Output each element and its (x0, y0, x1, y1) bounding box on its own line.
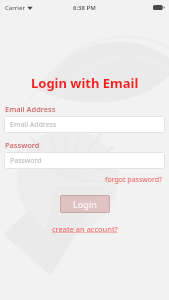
staticText: Login with Email (31, 74, 139, 92)
staticText: 6:38 PM (73, 4, 96, 12)
staticText: Password (10, 156, 42, 166)
button[interactable]: Password (4, 152, 165, 169)
staticText: Password (5, 140, 40, 150)
staticText: create an account? (52, 224, 118, 234)
staticText: Email Address (5, 104, 56, 114)
staticText: Email Address (10, 120, 57, 130)
staticText: forgot password? (105, 175, 163, 185)
staticText: Carrier (5, 4, 25, 12)
button[interactable]: create an account? (50, 222, 120, 236)
staticText: Login (73, 198, 97, 210)
button[interactable]: Login (60, 195, 110, 213)
button[interactable]: Email Address (4, 116, 165, 133)
button[interactable]: forgot password? (104, 174, 164, 186)
